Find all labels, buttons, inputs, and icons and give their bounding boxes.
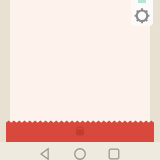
button[interactable]: Recent apps — [102, 142, 126, 160]
button[interactable]: Bottom action bar — [6, 120, 154, 144]
button[interactable]: Settings — [131, 0, 153, 26]
button[interactable]: Back — [33, 142, 57, 160]
button[interactable]: Home — [68, 142, 92, 160]
